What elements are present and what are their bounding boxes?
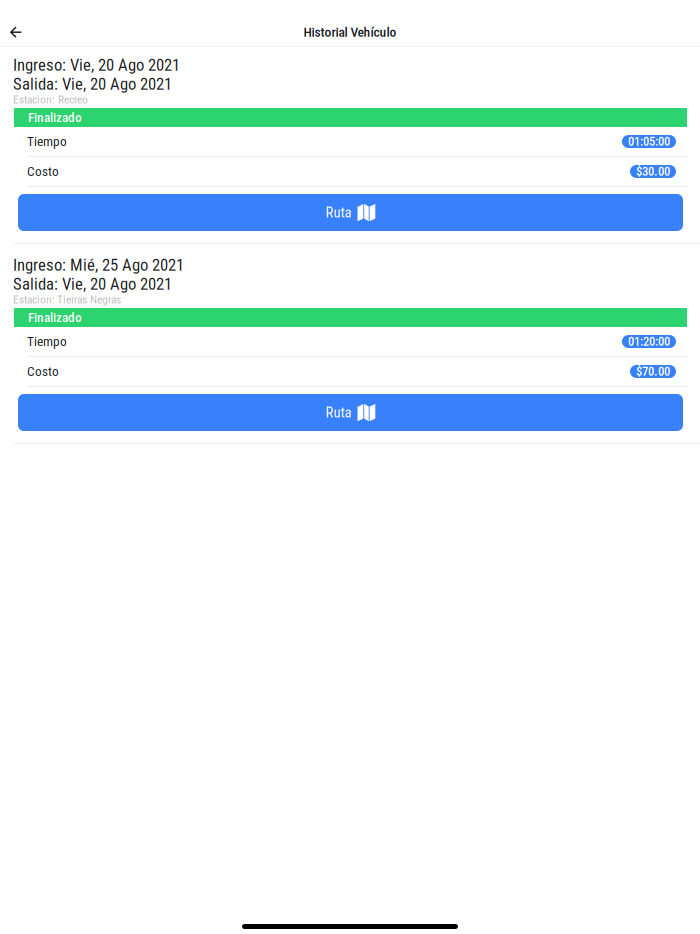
staticText: Ingreso: Mié, 25 Ago 2021 — [13, 255, 184, 275]
staticText: 01:20:00 — [628, 334, 670, 349]
staticText: Ingreso: Vie, 20 Ago 2021 — [13, 55, 180, 75]
button[interactable]: Ruta — [18, 394, 683, 431]
staticText: Costo — [27, 364, 59, 379]
staticText: Finalizado — [28, 110, 82, 125]
staticText: $70.00 — [636, 364, 670, 379]
button[interactable]: Ruta — [18, 194, 683, 231]
staticText: Estacion: Tierras Negras — [13, 293, 121, 306]
staticText: Salida: Vie, 20 Ago 2021 — [13, 274, 172, 294]
staticText: 01:05:00 — [628, 134, 670, 149]
staticText: Estacion: Recreo — [13, 93, 88, 106]
staticText: Tiempo — [27, 134, 67, 149]
staticText: Historial Vehículo — [303, 24, 396, 40]
staticText: Costo — [27, 164, 59, 179]
staticText: $30.00 — [636, 164, 670, 179]
staticText: Finalizado — [28, 310, 82, 325]
staticText: Ruta — [325, 204, 351, 221]
staticText: Ruta — [325, 404, 351, 421]
button[interactable]: Back — [0, 9, 36, 40]
staticText: Tiempo — [27, 334, 67, 349]
staticText: Salida: Vie, 20 Ago 2021 — [13, 74, 172, 94]
